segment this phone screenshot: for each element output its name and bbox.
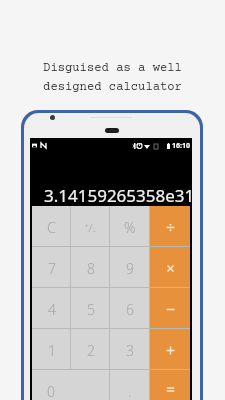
button[interactable]: 6 <box>110 288 150 329</box>
button[interactable]: 2 <box>71 329 110 370</box>
button[interactable]: 0 <box>32 370 110 400</box>
staticText: 7 <box>48 259 56 278</box>
button[interactable]: 4 <box>32 288 71 329</box>
button[interactable]: Multiply <box>150 247 190 288</box>
other: Equals <box>166 385 175 394</box>
staticText: 2 <box>87 341 95 360</box>
button[interactable]: 8 <box>71 247 110 288</box>
button[interactable]: Divide <box>150 206 190 247</box>
button[interactable]: 7 <box>32 247 71 288</box>
staticText: designed calculator <box>43 80 182 94</box>
staticText: 1 <box>48 341 56 360</box>
staticText: 16:10 <box>172 141 190 151</box>
other: Multiply <box>166 264 175 273</box>
button[interactable]: C <box>32 206 71 247</box>
button[interactable]: % <box>110 206 150 247</box>
button[interactable]: ⁺/₋ <box>71 206 110 247</box>
other: Saved <box>32 143 37 148</box>
other: NFC <box>41 143 46 148</box>
button[interactable]: Equals <box>150 370 190 400</box>
other: Divide <box>166 223 175 232</box>
staticText: 5 <box>87 300 95 319</box>
staticText: 8 <box>87 259 95 278</box>
button[interactable]: 5 <box>71 288 110 329</box>
button[interactable]: Minus <box>150 288 190 329</box>
staticText: Disguised as a well <box>43 61 182 75</box>
button[interactable]: 1 <box>32 329 71 370</box>
staticText: 0 <box>47 382 55 400</box>
other: Plus <box>166 346 175 355</box>
staticText: 3 <box>126 341 134 360</box>
other: Minus <box>166 305 175 314</box>
staticText: 3.14159265358e31 <box>44 184 195 207</box>
button[interactable]: Plus <box>150 329 190 370</box>
staticText: ⁺/₋ <box>85 220 96 235</box>
staticText: % <box>124 218 136 237</box>
button[interactable]: 3 <box>110 329 150 370</box>
button[interactable]: 9 <box>110 247 150 288</box>
staticText: 4 <box>48 300 56 319</box>
staticText: C <box>47 218 56 237</box>
staticText: . <box>128 382 132 400</box>
staticText: 6 <box>126 300 134 319</box>
button[interactable]: . <box>110 370 150 400</box>
staticText: 9 <box>126 259 134 278</box>
